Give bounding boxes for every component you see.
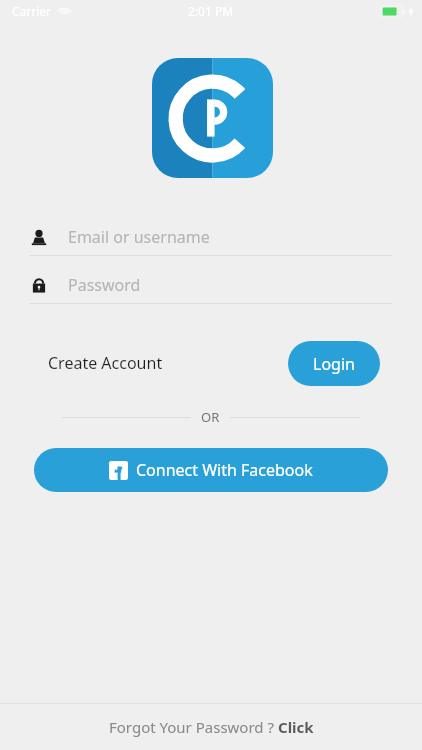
button[interactable]: Login	[288, 341, 380, 386]
button[interactable]: Forgot Your Password ?	[0, 704, 422, 750]
button[interactable]: Create Account	[44, 346, 167, 380]
staticText: Email or username	[68, 226, 210, 248]
button[interactable]: Connect With Facebook	[34, 448, 388, 492]
button[interactable]: Email or username	[0, 219, 422, 255]
staticText: OR	[201, 408, 220, 426]
staticText: 2:01 PM	[188, 3, 234, 19]
staticText: Forgot Your Password ?	[109, 717, 278, 737]
staticText: Carrier	[12, 3, 52, 19]
staticText: Password	[68, 274, 141, 296]
staticText: Connect With Facebook	[136, 459, 313, 481]
staticText: Click	[278, 717, 314, 737]
button[interactable]: Password	[0, 267, 422, 303]
staticText: Create Account	[48, 352, 163, 374]
staticText: Login	[313, 353, 355, 375]
